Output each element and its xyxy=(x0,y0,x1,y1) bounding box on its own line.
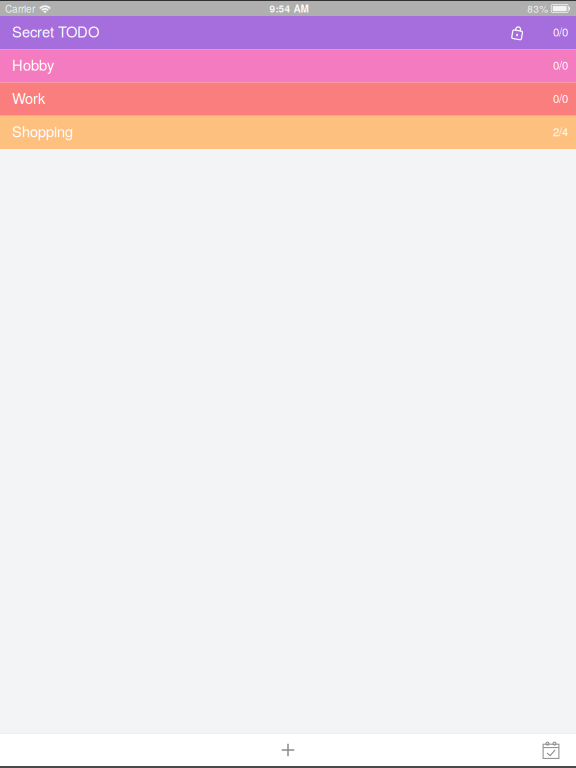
staticText: 2/4 xyxy=(553,123,568,139)
staticText: 0/0 xyxy=(553,57,568,73)
staticText: 0/0 xyxy=(553,23,568,40)
staticText: 9:54 AM xyxy=(270,1,309,16)
staticText: 0/0 xyxy=(553,90,568,106)
staticText: 83% xyxy=(527,1,548,16)
staticText: Hobby xyxy=(12,54,54,75)
button[interactable]: Hobby xyxy=(0,49,576,82)
staticText: Secret TODO xyxy=(12,21,99,42)
button[interactable]: Secret TODO xyxy=(0,16,576,49)
button[interactable]: Shopping xyxy=(0,116,576,149)
staticText: Shopping xyxy=(12,120,73,141)
staticText: Carrier xyxy=(5,1,35,16)
staticText: Work xyxy=(12,87,45,108)
button[interactable]: Work xyxy=(0,82,576,116)
button[interactable]: New list xyxy=(266,734,310,766)
button[interactable]: Today xyxy=(529,734,573,766)
